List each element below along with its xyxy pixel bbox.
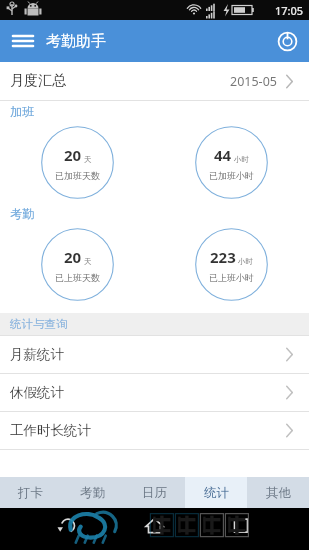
staticText: 其他 bbox=[266, 485, 291, 501]
button[interactable]: 20 bbox=[41, 228, 114, 301]
staticText: 天 bbox=[84, 257, 92, 266]
staticText: 考勤 bbox=[80, 485, 105, 501]
button[interactable]: Settings bbox=[265, 20, 309, 62]
button[interactable]: 休假统计 bbox=[0, 374, 309, 411]
staticText: 统计 bbox=[204, 485, 229, 501]
staticText: 休假统计 bbox=[10, 384, 64, 401]
button[interactable]: 考勤 bbox=[61, 477, 123, 508]
staticText: 已上班小时 bbox=[209, 272, 254, 283]
button[interactable]: 月度汇总 bbox=[0, 62, 309, 100]
staticText: 加班 bbox=[10, 104, 34, 119]
button[interactable]: 20 bbox=[41, 126, 114, 199]
staticText: 20 bbox=[64, 145, 82, 165]
staticText: 考勤助手 bbox=[46, 32, 106, 51]
staticText: 小时 bbox=[234, 155, 249, 164]
staticText: 月薪统计 bbox=[10, 346, 64, 363]
staticText: 17:05 bbox=[275, 3, 304, 18]
button[interactable]: 月薪统计 bbox=[0, 336, 309, 373]
staticText: 20 bbox=[64, 247, 82, 267]
button[interactable]: 日历 bbox=[123, 477, 185, 508]
button[interactable]: 统计 bbox=[185, 477, 247, 508]
staticText: 小时 bbox=[238, 257, 253, 266]
staticText: 已加班天数 bbox=[55, 170, 100, 181]
staticText: 打卡 bbox=[18, 485, 43, 501]
staticText: 日历 bbox=[142, 485, 167, 501]
staticText: 44 bbox=[214, 145, 232, 165]
button[interactable]: 工作时长统计 bbox=[0, 412, 309, 449]
staticText: 223 bbox=[210, 247, 236, 267]
button[interactable]: 223 bbox=[195, 228, 268, 301]
staticText: 2015-05 bbox=[230, 73, 277, 90]
button[interactable]: 其他 bbox=[247, 477, 309, 508]
button[interactable]: 打卡 bbox=[0, 477, 61, 508]
staticText: 工作时长统计 bbox=[10, 422, 91, 439]
staticText: 已加班小时 bbox=[209, 170, 254, 181]
button[interactable]: 44 bbox=[195, 126, 268, 199]
staticText: 统计与查询 bbox=[10, 317, 68, 331]
button[interactable]: Menu bbox=[0, 20, 46, 62]
staticText: 已上班天数 bbox=[55, 272, 100, 283]
staticText: 月度汇总 bbox=[10, 72, 66, 90]
staticText: 天 bbox=[84, 155, 92, 164]
staticText: 考勤 bbox=[10, 206, 34, 221]
